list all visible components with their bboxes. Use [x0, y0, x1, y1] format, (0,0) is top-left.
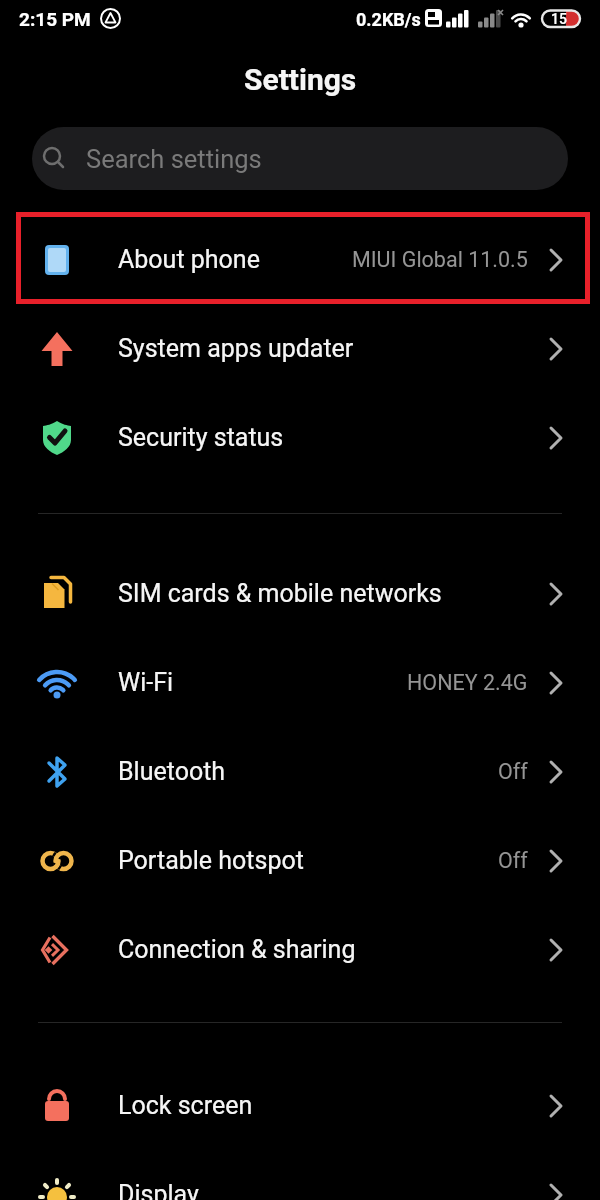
staticText: Search settings: [86, 144, 262, 174]
staticText: Display: [118, 1180, 199, 1200]
staticText: Security status: [118, 423, 284, 452]
staticText: 15: [551, 11, 567, 27]
staticText: Settings: [244, 62, 357, 97]
staticText: Off: [498, 759, 528, 784]
button[interactable]: Portable hotspot: [0, 816, 600, 905]
staticText: Wi-Fi: [118, 668, 174, 697]
button[interactable]: Search settings: [32, 127, 568, 190]
staticText: Lock screen: [118, 1091, 253, 1120]
staticText: 0.2KB/s: [356, 9, 421, 30]
staticText: 2:15 PM: [19, 8, 91, 30]
button[interactable]: Wi-Fi: [0, 638, 600, 727]
staticText: Portable hotspot: [118, 846, 304, 875]
button[interactable]: Security status: [0, 393, 600, 482]
staticText: HONEY 2.4G: [407, 670, 528, 695]
button[interactable]: System apps updater: [0, 304, 600, 393]
button[interactable]: Bluetooth: [0, 727, 600, 816]
button[interactable]: Lock screen: [0, 1061, 600, 1150]
staticText: Off: [498, 848, 528, 873]
staticText: System apps updater: [118, 334, 354, 363]
button[interactable]: Connection & sharing: [0, 905, 600, 994]
staticText: Connection & sharing: [118, 935, 356, 964]
button[interactable]: SIM cards & mobile networks: [0, 549, 600, 638]
staticText: MIUI Global 11.0.5: [352, 247, 528, 272]
staticText: Bluetooth: [118, 757, 226, 786]
button[interactable]: Display: [0, 1150, 600, 1200]
staticText: SIM cards & mobile networks: [118, 579, 442, 608]
staticText: About phone: [118, 245, 260, 274]
button[interactable]: About phone: [0, 215, 600, 304]
